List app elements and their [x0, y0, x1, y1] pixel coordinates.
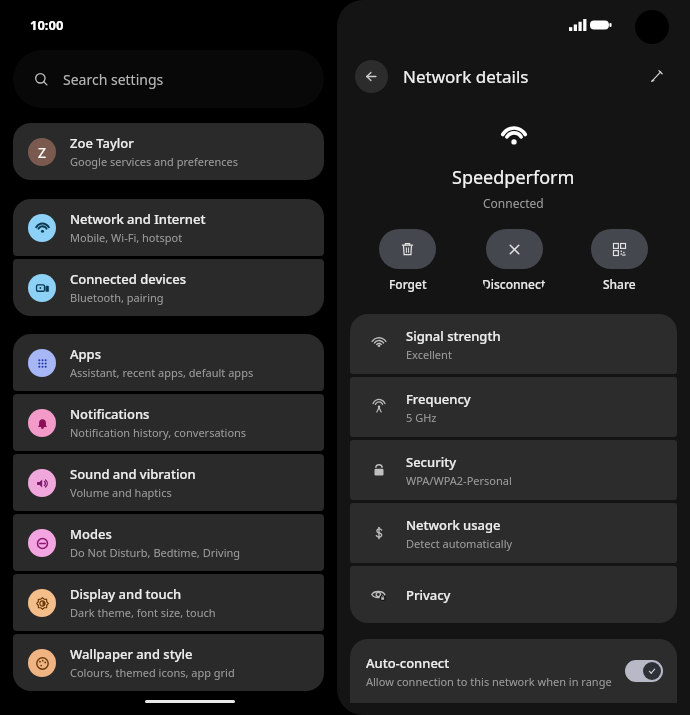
staticText: Zoe Taylor	[70, 134, 134, 152]
staticText: Modes	[70, 525, 112, 543]
staticText: Search settings	[63, 70, 164, 89]
staticText: Auto-connect	[366, 654, 450, 672]
button[interactable]: Auto-connect toggle	[625, 660, 663, 682]
staticText: Signal strength	[406, 327, 501, 345]
button[interactable]: Display and touch	[13, 574, 324, 631]
staticText: Notification history, conversations	[70, 425, 247, 440]
button[interactable]: Privacy	[350, 566, 677, 623]
button[interactable]: Security	[350, 440, 677, 500]
staticText: Network and Internet	[70, 210, 206, 228]
button[interactable]: Sound and vibration	[13, 454, 324, 511]
staticText: Colours, themed icons, app grid	[70, 665, 235, 680]
staticText: Detect automatically	[406, 536, 513, 551]
staticText: Z	[38, 143, 47, 162]
staticText: Privacy	[406, 586, 451, 604]
button[interactable]: Auto-connect	[350, 639, 677, 703]
staticText: Share	[603, 276, 636, 292]
button[interactable]: Connected devices	[13, 259, 324, 316]
staticText: Wallpaper and style	[70, 645, 193, 663]
button[interactable]: Z	[13, 123, 324, 180]
button[interactable]: Forget network	[379, 229, 436, 292]
staticText: Disconnect	[482, 276, 546, 292]
staticText: Allow connection to this network when in…	[366, 674, 612, 689]
staticText: Sound and vibration	[70, 465, 196, 483]
staticText: WPA/WPA2-Personal	[406, 473, 512, 488]
button[interactable]: Notifications	[13, 394, 324, 451]
staticText: Frequency	[406, 390, 471, 408]
button[interactable]: Modes	[13, 514, 324, 571]
button[interactable]: Edit	[642, 61, 672, 91]
staticText: Forget	[389, 276, 427, 292]
staticText: 5 GHz	[406, 410, 437, 425]
button[interactable]: Network and Internet	[13, 199, 324, 256]
staticText: Apps	[70, 345, 101, 363]
button[interactable]: Disconnect	[482, 229, 546, 292]
button[interactable]: Wallpaper and style	[13, 634, 324, 691]
staticText: Do Not Disturb, Bedtime, Driving	[70, 545, 241, 560]
staticText: Network usage	[406, 516, 501, 534]
button[interactable]: Signal strength	[350, 314, 677, 374]
staticText: Volume and haptics	[70, 485, 172, 500]
staticText: Connected devices	[70, 270, 187, 288]
staticText: Network details	[403, 65, 529, 88]
staticText: Display and touch	[70, 585, 182, 603]
button[interactable]: Frequency	[350, 377, 677, 437]
staticText: Notifications	[70, 405, 150, 423]
button[interactable]: Back	[355, 60, 388, 93]
staticText: Google services and preferences	[70, 154, 238, 169]
staticText: 10:00	[30, 16, 64, 34]
staticText: Dark theme, font size, touch	[70, 605, 216, 620]
staticText: Connected	[483, 195, 544, 211]
button[interactable]: Apps	[13, 334, 324, 391]
staticText: Assistant, recent apps, default apps	[70, 365, 254, 380]
staticText: Bluetooth, pairing	[70, 290, 164, 305]
button[interactable]: Network usage	[350, 503, 677, 563]
button[interactable]: Share network	[591, 229, 648, 292]
staticText: Mobile, Wi-Fi, hotspot	[70, 230, 183, 245]
staticText: Excellent	[406, 347, 452, 362]
button[interactable]: Search settings	[13, 50, 324, 108]
staticText: Speedperform	[452, 165, 575, 190]
staticText: Security	[406, 453, 456, 471]
